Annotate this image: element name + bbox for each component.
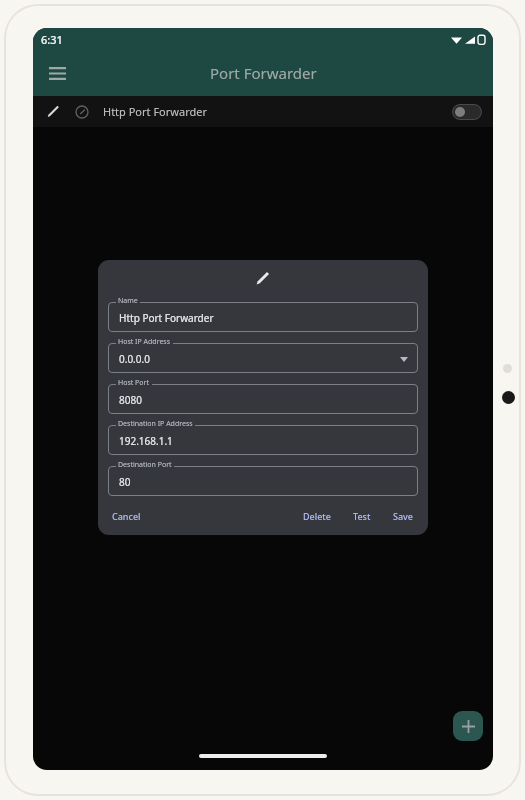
staticText: Host IP Address xyxy=(118,337,171,347)
staticText: Destination IP Address xyxy=(118,419,193,429)
staticText: Name xyxy=(118,296,138,306)
staticText: Save xyxy=(393,510,414,522)
staticText: Http Port Forwarder xyxy=(103,104,207,119)
staticText: Host Port xyxy=(118,378,150,388)
button[interactable]: Http Port Forwarder xyxy=(33,96,493,127)
staticText: Test xyxy=(353,510,371,522)
staticText: 192.168.1.1 xyxy=(119,434,173,448)
button[interactable]: Host Port xyxy=(108,378,418,414)
staticText: 80 xyxy=(119,475,131,489)
button[interactable]: Delete xyxy=(301,507,333,525)
staticText: 0.0.0.0 xyxy=(119,352,150,366)
staticText: Destination Port xyxy=(118,460,172,470)
button[interactable]: Enable Http Port Forwarder xyxy=(452,104,482,120)
staticText: Http Port Forwarder xyxy=(119,311,214,325)
staticText: Port Forwarder xyxy=(210,63,317,83)
staticText: 8080 xyxy=(119,393,142,407)
button[interactable]: Save xyxy=(391,507,416,525)
staticText: Delete xyxy=(303,510,331,522)
button[interactable]: Add port forwarder xyxy=(453,711,483,741)
button[interactable]: Open navigation menu xyxy=(39,55,75,91)
button[interactable]: Host IP Address xyxy=(108,337,418,373)
staticText: 6:31 xyxy=(41,32,63,47)
button[interactable]: Name xyxy=(108,296,418,332)
button[interactable]: Destination Port xyxy=(108,460,418,496)
button[interactable]: Destination IP Address xyxy=(108,419,418,455)
button[interactable]: Test xyxy=(351,507,373,525)
button[interactable]: Cancel xyxy=(110,507,143,525)
staticText: Cancel xyxy=(112,510,141,522)
